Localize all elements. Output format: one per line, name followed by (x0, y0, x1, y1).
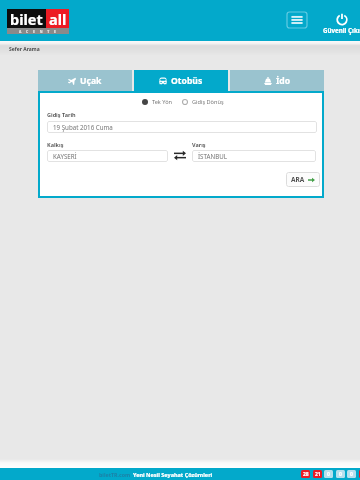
button[interactable]: KAYSERİ (47, 150, 168, 162)
staticText: Varış (192, 141, 206, 148)
staticText: Uçak (80, 75, 102, 87)
staticText: Yeni Nesil Seyahat Çözümleri (133, 471, 213, 478)
button[interactable]: Güvenli Çıkış (320, 11, 360, 37)
staticText: 19 Şubat 2016 Cuma (53, 123, 113, 131)
staticText: ACENTE (19, 29, 61, 34)
button[interactable]: ARA (286, 172, 320, 187)
staticText: Otobüs (171, 75, 203, 87)
button[interactable]: 21 (313, 470, 322, 478)
staticText: İdo (276, 75, 291, 87)
staticText: KAYSERİ (53, 152, 77, 160)
button[interactable]: 0 (347, 470, 356, 478)
staticText: Güvenli Çıkış (323, 26, 360, 34)
button[interactable]: İSTANBUL (192, 150, 316, 162)
staticText: all (49, 9, 67, 28)
staticText: İSTANBUL (198, 152, 227, 160)
button[interactable]: Otobüs (134, 70, 228, 92)
button[interactable]: Tek Yön (142, 98, 173, 106)
button[interactable]: İdo (230, 70, 324, 92)
staticText: Sefer Arama (9, 46, 40, 53)
staticText: 0 (339, 471, 342, 478)
staticText: Tek Yön (152, 98, 173, 106)
button[interactable]: 1 (359, 470, 360, 478)
staticText: Gidiş Dönüş (192, 98, 224, 106)
staticText: biletTR.com (99, 471, 131, 478)
staticText: 0 (350, 471, 353, 478)
staticText: Gidiş Tarih (47, 111, 76, 118)
staticText: 28 (303, 471, 309, 478)
button[interactable]: 28 (301, 470, 310, 478)
staticText: 21 (315, 471, 321, 478)
button[interactable]: Menu (287, 12, 307, 28)
button[interactable]: Gidiş Dönüş (182, 98, 224, 106)
button[interactable]: 0 (324, 470, 333, 478)
button[interactable]: Uçak (38, 70, 132, 92)
button[interactable]: 19 Şubat 2016 Cuma (47, 121, 317, 133)
staticText: bilet (10, 9, 43, 28)
button[interactable]: Swap origin and destination (174, 151, 186, 160)
staticText: 0 (327, 471, 330, 478)
staticText: ARA (291, 175, 305, 184)
button[interactable]: 0 (336, 470, 345, 478)
staticText: Kalkış (47, 141, 64, 148)
